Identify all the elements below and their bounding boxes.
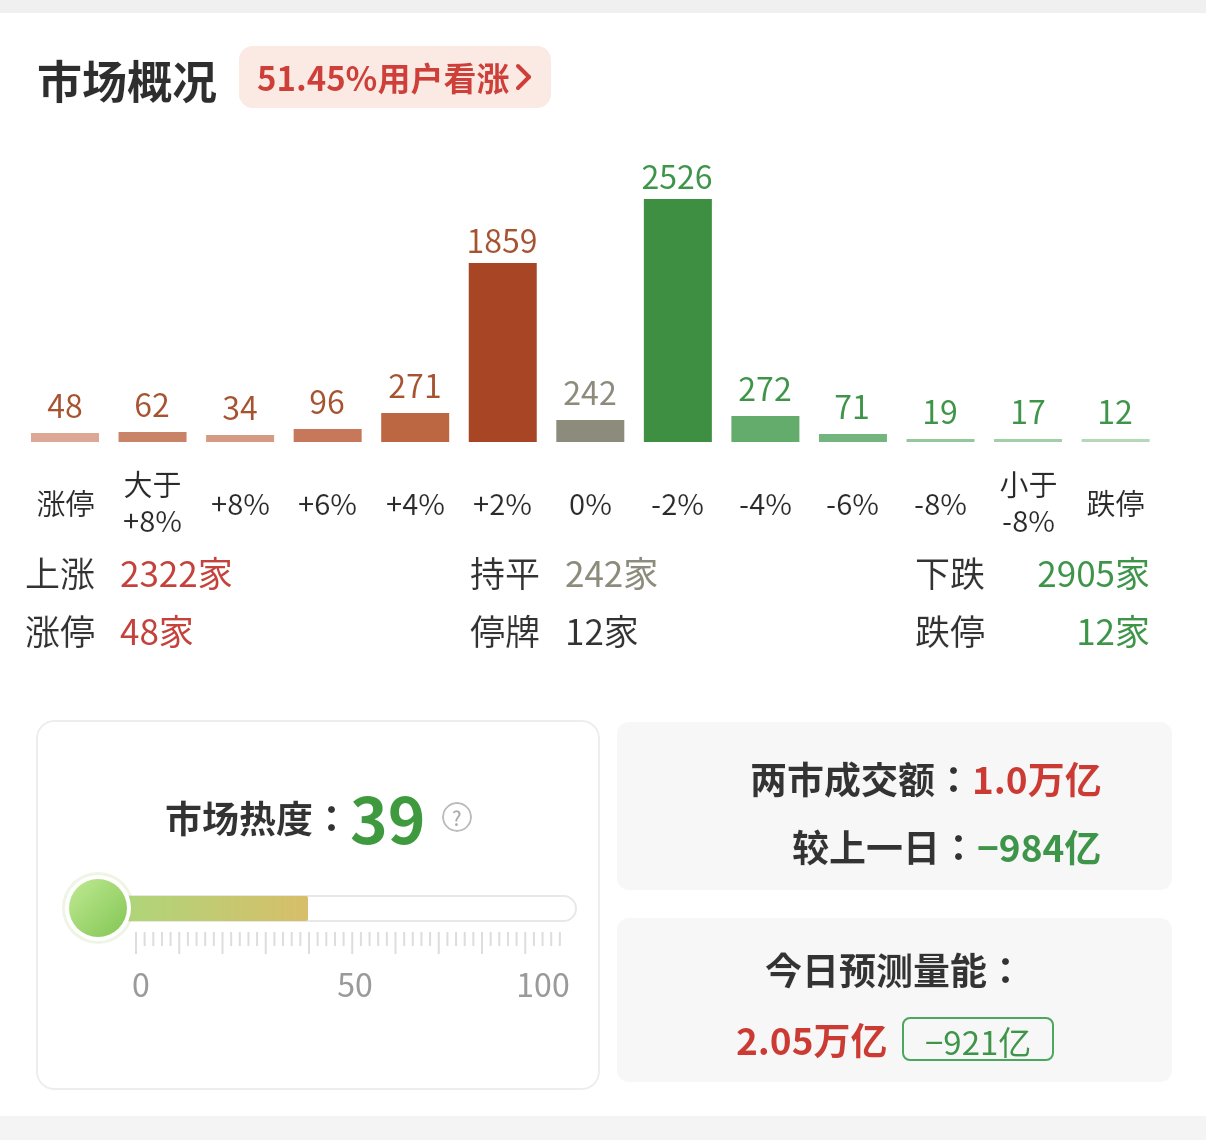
staticText: 62 — [134, 380, 170, 426]
staticText: 100 — [516, 960, 570, 1006]
staticText: 39 — [350, 770, 426, 863]
button[interactable]: ? — [442, 802, 472, 832]
staticText: 2905家 — [1037, 546, 1150, 597]
staticText: +4% — [386, 481, 445, 523]
staticText: 涨停 — [25, 604, 96, 655]
staticText: 上涨 — [25, 546, 96, 597]
staticText: 34 — [222, 383, 258, 429]
staticText: −921亿 — [925, 1017, 1032, 1061]
staticText: 1.0万亿 — [972, 751, 1102, 805]
staticText: 小于 — [999, 462, 1058, 504]
staticText: 71 — [834, 382, 870, 428]
staticText: 272 — [738, 364, 792, 410]
staticText: 跌停 — [915, 604, 986, 655]
staticText: -4% — [739, 481, 792, 523]
staticText: 12 — [1097, 387, 1133, 433]
staticText: 17 — [1010, 387, 1046, 433]
staticText: 19 — [922, 387, 958, 433]
button[interactable]: 51.45%用户看涨 — [239, 46, 551, 108]
staticText: -6% — [826, 481, 879, 523]
staticText: 下跌 — [915, 546, 986, 597]
staticText: 1859 — [466, 216, 538, 262]
staticText: 大于 — [123, 462, 182, 504]
staticText: 两市成交额： — [750, 751, 972, 805]
staticText: 48 — [47, 381, 83, 427]
button[interactable]: 今日预测量能： — [617, 918, 1172, 1082]
staticText: ? — [452, 803, 462, 832]
staticText: +6% — [298, 481, 357, 523]
staticText: -8% — [914, 481, 967, 523]
staticText: 涨停 — [36, 481, 95, 523]
staticText: 51.45%用户看涨 — [257, 53, 510, 101]
staticText: +8% — [123, 498, 182, 540]
staticText: 2322家 — [120, 546, 233, 597]
staticText: 市场概况 — [37, 47, 218, 112]
staticText: 停牌 — [470, 604, 541, 655]
staticText: −984亿 — [977, 819, 1102, 873]
staticText: 12家 — [565, 604, 639, 655]
button[interactable]: 两市成交额： — [617, 722, 1172, 890]
staticText: 242 — [563, 368, 617, 414]
staticText: 96 — [309, 377, 345, 423]
staticText: 今日预测量能： — [765, 942, 1024, 996]
staticText: 48家 — [120, 604, 194, 655]
staticText: 12家 — [1076, 604, 1150, 655]
staticText: -8% — [1002, 498, 1055, 540]
staticText: 50 — [337, 960, 373, 1006]
staticText: 242家 — [565, 546, 659, 597]
staticText: 2.05万亿 — [736, 1012, 888, 1066]
staticText: 0% — [569, 481, 612, 523]
staticText: +2% — [473, 481, 532, 523]
staticText: +8% — [211, 481, 270, 523]
staticText: 市场热度： — [165, 790, 350, 844]
button[interactable]: 市场热度： — [36, 720, 600, 1090]
staticText: 271 — [388, 361, 442, 407]
staticText: 跌停 — [1086, 481, 1145, 523]
staticText: 0 — [132, 960, 150, 1006]
staticText: 持平 — [470, 546, 541, 597]
staticText: -2% — [651, 481, 704, 523]
staticText: 2526 — [641, 152, 713, 198]
staticText: 较上一日： — [792, 819, 977, 873]
